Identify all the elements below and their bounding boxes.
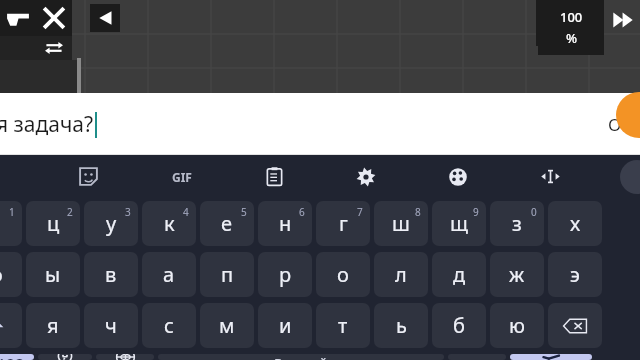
button[interactable]: Fast forward xyxy=(606,6,640,34)
staticText: н xyxy=(279,210,292,237)
staticText: ш xyxy=(392,210,410,237)
button[interactable]: м xyxy=(200,303,254,348)
button[interactable]: Action xyxy=(616,92,640,138)
button[interactable]: и xyxy=(258,303,312,348)
staticText: 1 xyxy=(9,205,15,219)
staticText: % xyxy=(566,29,578,47)
staticText: OK xyxy=(608,113,632,136)
staticText: м xyxy=(219,312,235,339)
staticText: Русский xyxy=(274,354,328,360)
button[interactable]: а xyxy=(142,252,196,297)
button[interactable]: Theme xyxy=(412,155,504,198)
button[interactable]: Text editing xyxy=(504,155,596,198)
button[interactable]: Clipboard xyxy=(228,155,320,198)
staticText: у xyxy=(106,210,117,237)
button[interactable]: Collapse xyxy=(620,160,640,194)
staticText: я задача? xyxy=(0,110,94,139)
staticText: а xyxy=(163,261,175,288)
staticText: з xyxy=(512,210,522,237)
staticText: к xyxy=(164,210,175,237)
button[interactable]: Emoji xyxy=(38,354,92,360)
button[interactable]: э xyxy=(548,252,602,297)
button[interactable]: н xyxy=(258,201,312,246)
button[interactable]: б xyxy=(432,303,486,348)
staticText: 100 xyxy=(560,8,583,26)
staticText: ю xyxy=(509,312,525,339)
button[interactable]: Attack xyxy=(36,0,72,36)
button[interactable]: л xyxy=(374,252,428,297)
staticText: е xyxy=(221,210,233,237)
button[interactable] xyxy=(0,303,22,348)
button[interactable]: ш xyxy=(374,201,428,246)
button[interactable]: у xyxy=(84,201,138,246)
staticText: 0 xyxy=(531,205,537,219)
staticText: щ xyxy=(450,210,468,237)
staticText: я xyxy=(47,312,59,339)
staticText: 9 xyxy=(473,205,479,219)
staticText: х xyxy=(570,210,581,237)
staticText: ж xyxy=(509,261,525,288)
staticText: 8 xyxy=(415,205,421,219)
button[interactable]: GIF xyxy=(135,155,228,198)
button[interactable]: Русский xyxy=(158,354,444,360)
button[interactable]: ы xyxy=(26,252,80,297)
staticText: ц xyxy=(47,210,60,237)
button[interactable]: р xyxy=(258,252,312,297)
button[interactable]: д xyxy=(432,252,486,297)
staticText: л xyxy=(395,261,407,288)
button[interactable]: ь xyxy=(374,303,428,348)
staticText: GIF xyxy=(172,169,192,185)
staticText: о xyxy=(337,261,349,288)
button[interactable]: о xyxy=(316,252,370,297)
button[interactable]: я xyxy=(26,303,80,348)
staticText: п xyxy=(221,261,234,288)
button[interactable]: Stickers xyxy=(42,155,135,198)
staticText: б xyxy=(453,312,465,339)
staticText: т xyxy=(338,312,348,339)
button[interactable]: Backspace xyxy=(548,303,602,348)
button[interactable]: х xyxy=(548,201,602,246)
button[interactable]: OK xyxy=(608,113,632,136)
button[interactable]: Enter xyxy=(510,354,592,360)
button[interactable]: ц xyxy=(26,201,80,246)
button[interactable]: й xyxy=(0,201,22,246)
staticText: р xyxy=(279,261,292,288)
button[interactable]: в xyxy=(84,252,138,297)
staticText: 2 xyxy=(67,205,73,219)
button[interactable]: ч xyxy=(84,303,138,348)
staticText: с xyxy=(164,312,174,339)
staticText: 3 xyxy=(125,205,131,219)
staticText: 4 xyxy=(183,205,189,219)
button[interactable]: з xyxy=(490,201,544,246)
staticText: в xyxy=(105,261,117,288)
staticText: ь xyxy=(396,312,407,339)
button[interactable]: Swap xyxy=(36,36,72,60)
staticText: ы xyxy=(45,261,61,288)
button[interactable]: к xyxy=(142,201,196,246)
button[interactable]: Change language xyxy=(96,354,154,360)
staticText: 5 xyxy=(241,205,247,219)
button[interactable]: щ xyxy=(432,201,486,246)
button[interactable]: Rewind xyxy=(90,4,120,32)
button[interactable]: т xyxy=(316,303,370,348)
button[interactable]: Weapon xyxy=(0,0,36,36)
staticText: 7 xyxy=(357,205,363,219)
button[interactable]: с xyxy=(142,303,196,348)
button[interactable]: е xyxy=(200,201,254,246)
button[interactable]: Settings xyxy=(320,155,412,198)
staticText: ?123 xyxy=(0,354,25,360)
staticText: 6 xyxy=(299,205,305,219)
button[interactable]: ?123 xyxy=(0,354,34,360)
button[interactable]: п xyxy=(200,252,254,297)
staticText: ф xyxy=(0,261,3,288)
button[interactable]: ю xyxy=(490,303,544,348)
button[interactable]: ф xyxy=(0,252,22,297)
staticText: г xyxy=(339,210,348,237)
staticText: э xyxy=(570,261,580,288)
button[interactable]: ж xyxy=(490,252,544,297)
button[interactable]: г xyxy=(316,201,370,246)
button[interactable]: 100 xyxy=(538,0,604,55)
